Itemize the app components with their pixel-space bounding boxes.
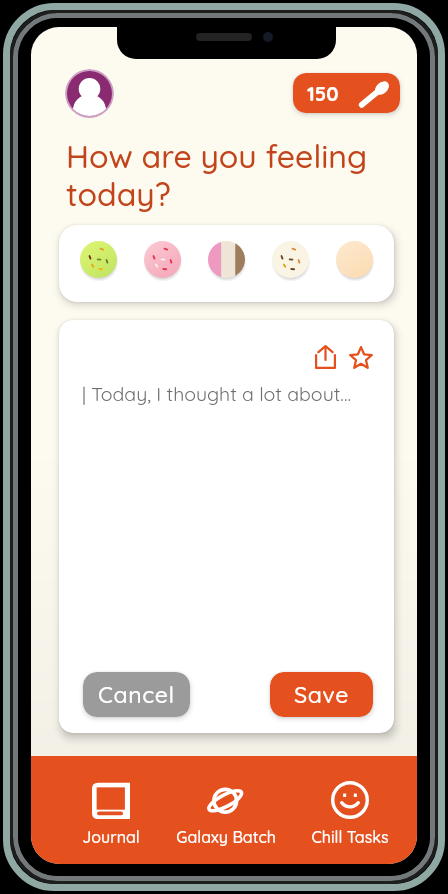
staticText: How are you feeling today? [66,136,371,214]
button[interactable]: Galaxy Batch [176,781,276,847]
button[interactable]: Mood 3 [208,241,245,278]
button[interactable]: Profile [65,69,114,118]
staticText: 150 [307,81,339,106]
button[interactable]: Share [310,342,340,372]
button[interactable]: Mood 2 [144,241,181,278]
button[interactable]: Save [270,672,373,717]
staticText: Galaxy Batch [176,827,276,847]
staticText: | Today, I thought a lot about... [82,381,351,405]
button[interactable]: Chill Tasks [311,781,389,847]
staticText: Chill Tasks [311,827,389,847]
button[interactable]: Mood 1 [80,241,117,278]
button[interactable]: Favorite [346,342,376,372]
button[interactable]: Mood 4 [272,241,309,278]
button[interactable]: Cancel [83,672,190,717]
staticText: Save [294,680,349,709]
button[interactable]: Journal [82,781,140,847]
button[interactable]: 150 [293,73,400,113]
staticText: Cancel [98,680,175,709]
button[interactable]: Mood 5 [336,241,373,278]
staticText: Journal [82,827,140,847]
